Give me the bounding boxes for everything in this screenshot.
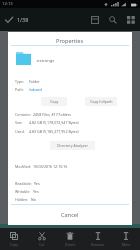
staticText: Cancel (61, 211, 79, 219)
staticText: 4.83 GB (5,185,277,952 Bytes) (29, 129, 79, 134)
staticText: Path: (15, 87, 27, 92)
staticText: 4.82 GB (5,178,072,547 Bytes) (29, 120, 79, 125)
button[interactable]: Copy (0, 228, 28, 250)
staticText: Contains: (15, 112, 31, 117)
staticText: 2458 Files, 817 Folders (33, 112, 72, 117)
staticText: Copy fullpath (90, 99, 113, 104)
staticText: Folder (29, 79, 40, 84)
staticText: 16/03/2016 12:10:16 (33, 164, 68, 169)
staticText: 12:13 (2, 1, 13, 7)
staticText: More (122, 242, 131, 247)
staticText: Hidden: (15, 197, 29, 202)
button[interactable]: Windows (86, 11, 104, 29)
staticText: 1/38 (17, 16, 29, 23)
button[interactable]: Delete (56, 228, 84, 250)
staticText: No (31, 197, 36, 202)
staticText: Readable: (15, 181, 32, 186)
staticText: Type: (15, 79, 27, 84)
staticText: Cut (39, 242, 45, 247)
button[interactable]: Search (104, 11, 122, 29)
button[interactable]: Directory Analyzer (50, 141, 95, 150)
button[interactable]: Copy (41, 97, 67, 106)
staticText: Modified: (15, 164, 31, 169)
staticText: Used: (15, 129, 27, 134)
staticText: Writable: (15, 189, 31, 194)
staticText: Size: (15, 120, 27, 125)
staticText: Copy (50, 99, 59, 104)
button[interactable]: Copy fullpath (85, 97, 117, 106)
staticText: Directory Analyzer (57, 143, 88, 148)
button[interactable]: More (112, 228, 140, 250)
staticText: Yes (33, 189, 39, 194)
staticText: Properties (56, 37, 84, 45)
button[interactable]: Cut (28, 228, 56, 250)
staticText: Delete (65, 242, 76, 247)
button[interactable]: View mode (122, 11, 140, 29)
staticText: Yes (34, 181, 40, 186)
staticText: /sdcard (29, 87, 42, 92)
staticText: Rename (91, 242, 105, 247)
button[interactable]: Cancel (8, 205, 132, 225)
button[interactable]: Select all (0, 11, 17, 28)
staticText: .estrongs (36, 58, 55, 64)
staticText: Copy (10, 242, 18, 247)
button[interactable]: Rename (84, 228, 112, 250)
